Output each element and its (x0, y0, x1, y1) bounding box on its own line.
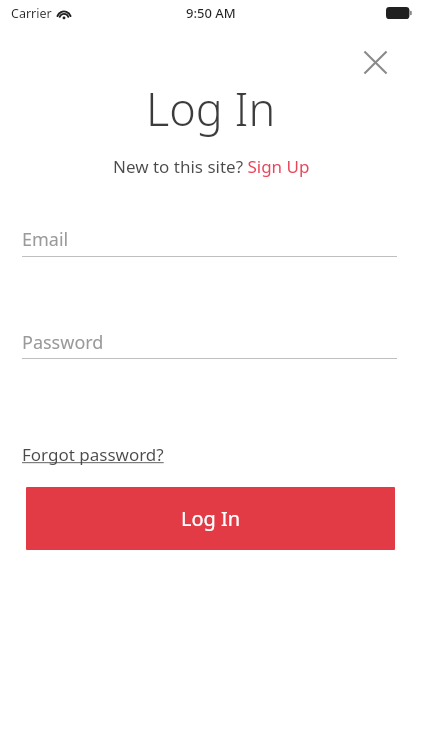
button[interactable]: Email (22, 227, 397, 267)
staticText: Email (22, 227, 69, 252)
staticText: Log In (146, 78, 276, 139)
button[interactable]: Password (22, 330, 397, 370)
button[interactable]: Forgot password? (14, 437, 172, 472)
staticText: Forgot password? (22, 443, 164, 466)
staticText: Log In (181, 505, 241, 532)
staticText: Password (22, 330, 104, 355)
button[interactable]: New to this site? Sign Up (109, 153, 314, 180)
staticText: New to this site? Sign Up (113, 155, 310, 178)
staticText: Carrier (11, 5, 52, 22)
button[interactable]: Log In (26, 487, 395, 550)
button[interactable]: Close (353, 40, 397, 84)
staticText: 9:50 AM (186, 4, 236, 22)
